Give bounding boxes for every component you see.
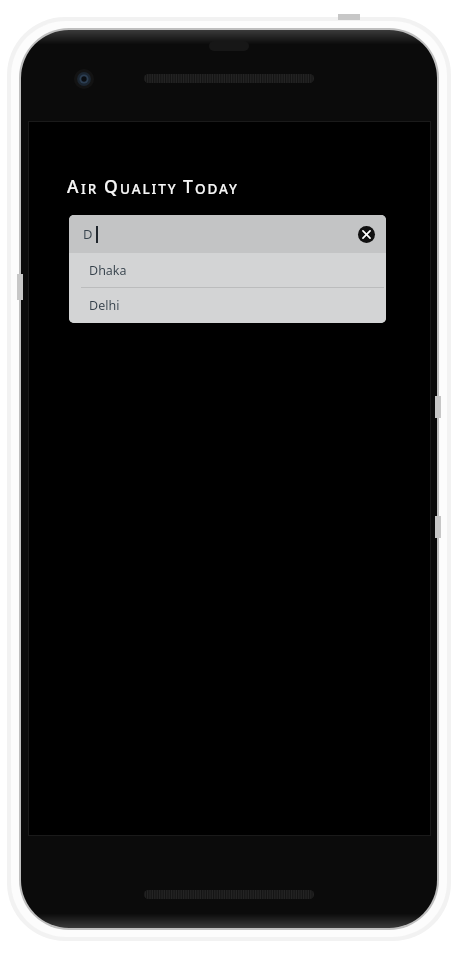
button[interactable]: Dhaka <box>69 253 386 288</box>
staticText: ODAY <box>195 180 239 198</box>
staticText: T <box>183 174 195 198</box>
button[interactable]: D <box>69 215 386 253</box>
staticText: Q <box>104 174 120 198</box>
staticText: A <box>67 174 81 198</box>
staticText: D <box>83 225 93 243</box>
staticText: UALITY <box>120 180 178 198</box>
staticText: Dhaka <box>89 262 127 279</box>
staticText: IR <box>81 180 99 198</box>
button[interactable]: Delhi <box>69 288 386 323</box>
button[interactable]: Clear text <box>356 224 376 244</box>
staticText: Delhi <box>89 297 120 314</box>
